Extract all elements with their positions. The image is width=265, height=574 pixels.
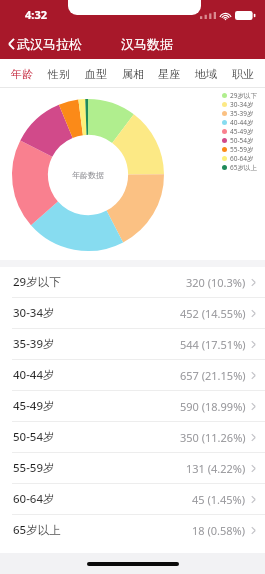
button[interactable]: 30-34岁 (0, 298, 265, 328)
button[interactable]: 职业 (228, 62, 258, 86)
staticText: 武汉马拉松 (17, 36, 82, 52)
staticText: 50-54岁 (13, 429, 55, 445)
staticText: 40-44岁 (230, 118, 254, 127)
button[interactable]: 40-44岁 (0, 360, 265, 390)
staticText: 血型 (85, 67, 107, 81)
staticText: 30-34岁 (13, 305, 55, 321)
button[interactable]: 50-54岁 (0, 422, 265, 452)
staticText: 65岁以上 (230, 163, 257, 172)
button[interactable]: 血型 (81, 62, 111, 86)
staticText: 590 (18.99%) (180, 399, 246, 414)
staticText: 35-39岁 (230, 109, 254, 118)
staticText: 55-59岁 (13, 460, 55, 476)
staticText: 职业 (232, 67, 254, 81)
button[interactable]: 地域 (191, 62, 221, 86)
staticText: 45-49岁 (230, 127, 254, 136)
staticText: 350 (11.26%) (180, 430, 246, 445)
staticText: 320 (10.3%) (186, 275, 246, 290)
staticText: 50-54岁 (230, 136, 254, 145)
staticText: 年龄 (11, 67, 33, 81)
button[interactable]: 星座 (154, 62, 184, 86)
button[interactable]: 属相 (118, 62, 148, 86)
staticText: 45 (1.45%) (192, 492, 246, 507)
staticText: 40-44岁 (13, 367, 55, 383)
staticText: 年龄数据 (72, 170, 104, 180)
staticText: 55-59岁 (230, 145, 254, 154)
staticText: 属相 (122, 67, 144, 81)
staticText: 18 (0.58%) (192, 523, 246, 538)
button[interactable]: 35-39岁 (0, 329, 265, 359)
staticText: 性别 (48, 67, 70, 81)
staticText: 65岁以上 (13, 522, 61, 538)
staticText: 地域 (195, 67, 217, 81)
button[interactable]: 60-64岁 (0, 484, 265, 514)
staticText: 29岁以下 (230, 91, 257, 100)
staticText: 35-39岁 (13, 336, 55, 352)
staticText: 60-64岁 (13, 491, 55, 507)
staticText: 131 (4.22%) (186, 461, 246, 476)
staticText: 汉马数据 (121, 36, 173, 52)
staticText: 657 (21.15%) (180, 368, 246, 383)
staticText: 4:32 (25, 7, 47, 22)
button[interactable]: 65岁以上 (0, 515, 265, 545)
staticText: 30-34岁 (230, 100, 254, 109)
staticText: 60-64岁 (230, 154, 254, 163)
button[interactable]: Back to 武汉马拉松 (4, 33, 85, 55)
staticText: 544 (17.51%) (180, 337, 246, 352)
button[interactable]: 29岁以下 (0, 267, 265, 297)
button[interactable]: 性别 (44, 62, 74, 86)
button[interactable]: 45-49岁 (0, 391, 265, 421)
staticText: 452 (14.55%) (180, 306, 246, 321)
staticText: 星座 (158, 67, 180, 81)
button[interactable]: 55-59岁 (0, 453, 265, 483)
button[interactable]: 年龄 (7, 62, 37, 86)
staticText: 29岁以下 (13, 274, 61, 290)
staticText: 45-49岁 (13, 398, 55, 414)
